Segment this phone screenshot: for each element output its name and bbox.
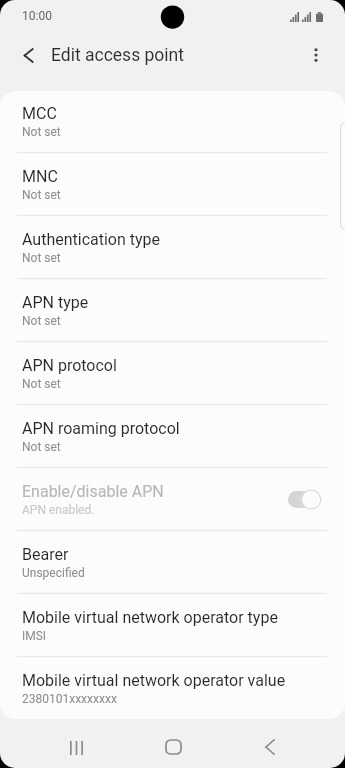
staticText: Bearer [22,545,69,564]
button[interactable]: APN type [0,279,345,341]
button[interactable]: Recent apps [55,729,97,767]
staticText: APN type [22,293,89,312]
staticText: Not set [22,314,61,328]
staticText: MNC [22,167,58,186]
button[interactable]: Enable/disable APN [282,477,326,521]
staticText: Authentication type [22,230,161,249]
button[interactable]: Navigate up [8,36,48,76]
button[interactable]: Authentication type [0,216,345,278]
staticText: 2380101xxxxxxxx [22,692,117,706]
staticText: Not set [22,377,61,391]
staticText: Unspecified [22,566,85,580]
button[interactable]: Mobile virtual network operator type [0,594,345,656]
staticText: 10:00 [22,9,52,23]
staticText: Edit access point [51,45,184,66]
button[interactable]: Bearer [0,531,345,593]
button[interactable]: APN roaming protocol [0,405,345,467]
staticText: APN protocol [22,356,117,375]
button[interactable]: Enable/disable APN [0,468,345,530]
staticText: APN enabled. [22,503,95,517]
staticText: IMSI [22,629,47,643]
staticText: Mobile virtual network operator value [22,671,286,690]
button[interactable]: More options [296,35,336,75]
staticText: Not set [22,125,61,139]
button[interactable]: MNC [0,153,345,215]
staticText: Not set [22,251,61,265]
staticText: MCC [22,104,57,123]
button[interactable]: Back [249,728,291,766]
button[interactable]: MCC [0,91,345,152]
staticText: Mobile virtual network operator type [22,608,278,627]
button[interactable]: Mobile virtual network operator value [0,657,345,719]
staticText: Not set [22,440,61,454]
staticText: Enable/disable APN [22,482,164,501]
staticText: Not set [22,188,61,202]
button[interactable]: APN protocol [0,342,345,404]
staticText: APN roaming protocol [22,419,180,438]
button[interactable]: Home [152,728,194,766]
